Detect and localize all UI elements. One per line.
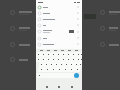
button[interactable] <box>56 67 62 72</box>
button[interactable] <box>62 67 68 72</box>
button[interactable]: Back <box>45 85 49 89</box>
button[interactable] <box>41 52 46 57</box>
button[interactable]: Home <box>57 85 61 89</box>
button[interactable] <box>66 57 71 62</box>
button[interactable] <box>59 62 64 67</box>
button[interactable] <box>81 57 82 62</box>
button[interactable] <box>56 57 61 62</box>
button[interactable] <box>37 73 42 78</box>
button[interactable] <box>76 57 81 62</box>
button[interactable] <box>41 57 46 62</box>
button[interactable] <box>76 52 81 57</box>
button[interactable] <box>69 62 74 67</box>
button[interactable] <box>74 62 79 67</box>
button[interactable] <box>36 52 41 57</box>
button[interactable] <box>49 62 54 67</box>
button[interactable]: Remove <box>36 35 82 41</box>
button[interactable]: Remove <box>36 28 82 35</box>
button[interactable] <box>46 57 51 62</box>
button[interactable] <box>46 52 51 57</box>
button[interactable] <box>38 67 44 72</box>
button[interactable]: Remove <box>36 22 82 28</box>
button[interactable] <box>64 62 69 67</box>
button[interactable] <box>66 52 71 57</box>
button[interactable] <box>51 57 56 62</box>
button[interactable] <box>79 62 82 67</box>
button[interactable] <box>56 52 61 57</box>
button[interactable] <box>61 57 66 62</box>
button[interactable] <box>50 67 56 72</box>
button[interactable]: Remove <box>36 41 82 47</box>
button[interactable] <box>71 52 76 57</box>
button[interactable] <box>51 52 56 57</box>
button[interactable]: Search <box>74 73 79 78</box>
button[interactable] <box>54 62 59 67</box>
button[interactable] <box>36 57 41 62</box>
button[interactable] <box>81 52 82 57</box>
button[interactable] <box>71 57 76 62</box>
button[interactable] <box>61 52 66 57</box>
button[interactable] <box>74 67 80 72</box>
button[interactable]: Remove <box>36 16 82 22</box>
button[interactable]: Remove <box>36 10 82 16</box>
button[interactable]: Recents <box>70 85 74 89</box>
button[interactable] <box>39 62 44 67</box>
button[interactable] <box>68 67 74 72</box>
button[interactable] <box>44 62 49 67</box>
button[interactable] <box>44 67 50 72</box>
button[interactable]: Remove <box>36 4 82 10</box>
